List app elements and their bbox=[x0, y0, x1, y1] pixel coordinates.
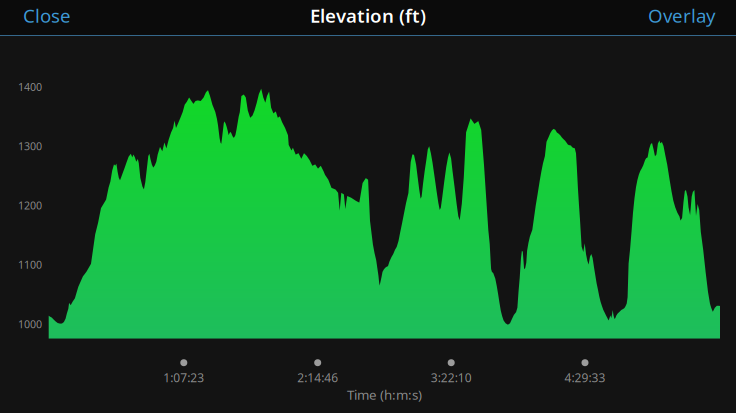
staticText: Close bbox=[23, 3, 71, 28]
button[interactable]: Close bbox=[0, 0, 93, 35]
button[interactable]: Overlay bbox=[646, 0, 736, 35]
staticText: 1400 bbox=[18, 80, 42, 94]
staticText: 1200 bbox=[18, 198, 42, 212]
staticText: 2:14:46 bbox=[297, 369, 338, 385]
staticText: 1300 bbox=[18, 139, 42, 153]
staticText: Time (h:m:s) bbox=[347, 386, 422, 403]
staticText: Elevation (ft) bbox=[310, 3, 426, 28]
staticText: 1000 bbox=[18, 317, 42, 331]
staticText: 3:22:10 bbox=[431, 369, 472, 385]
staticText: 1100 bbox=[18, 258, 42, 272]
staticText: 1:07:23 bbox=[163, 369, 204, 385]
staticText: 4:29:33 bbox=[564, 369, 605, 385]
staticText: Overlay bbox=[648, 3, 716, 28]
